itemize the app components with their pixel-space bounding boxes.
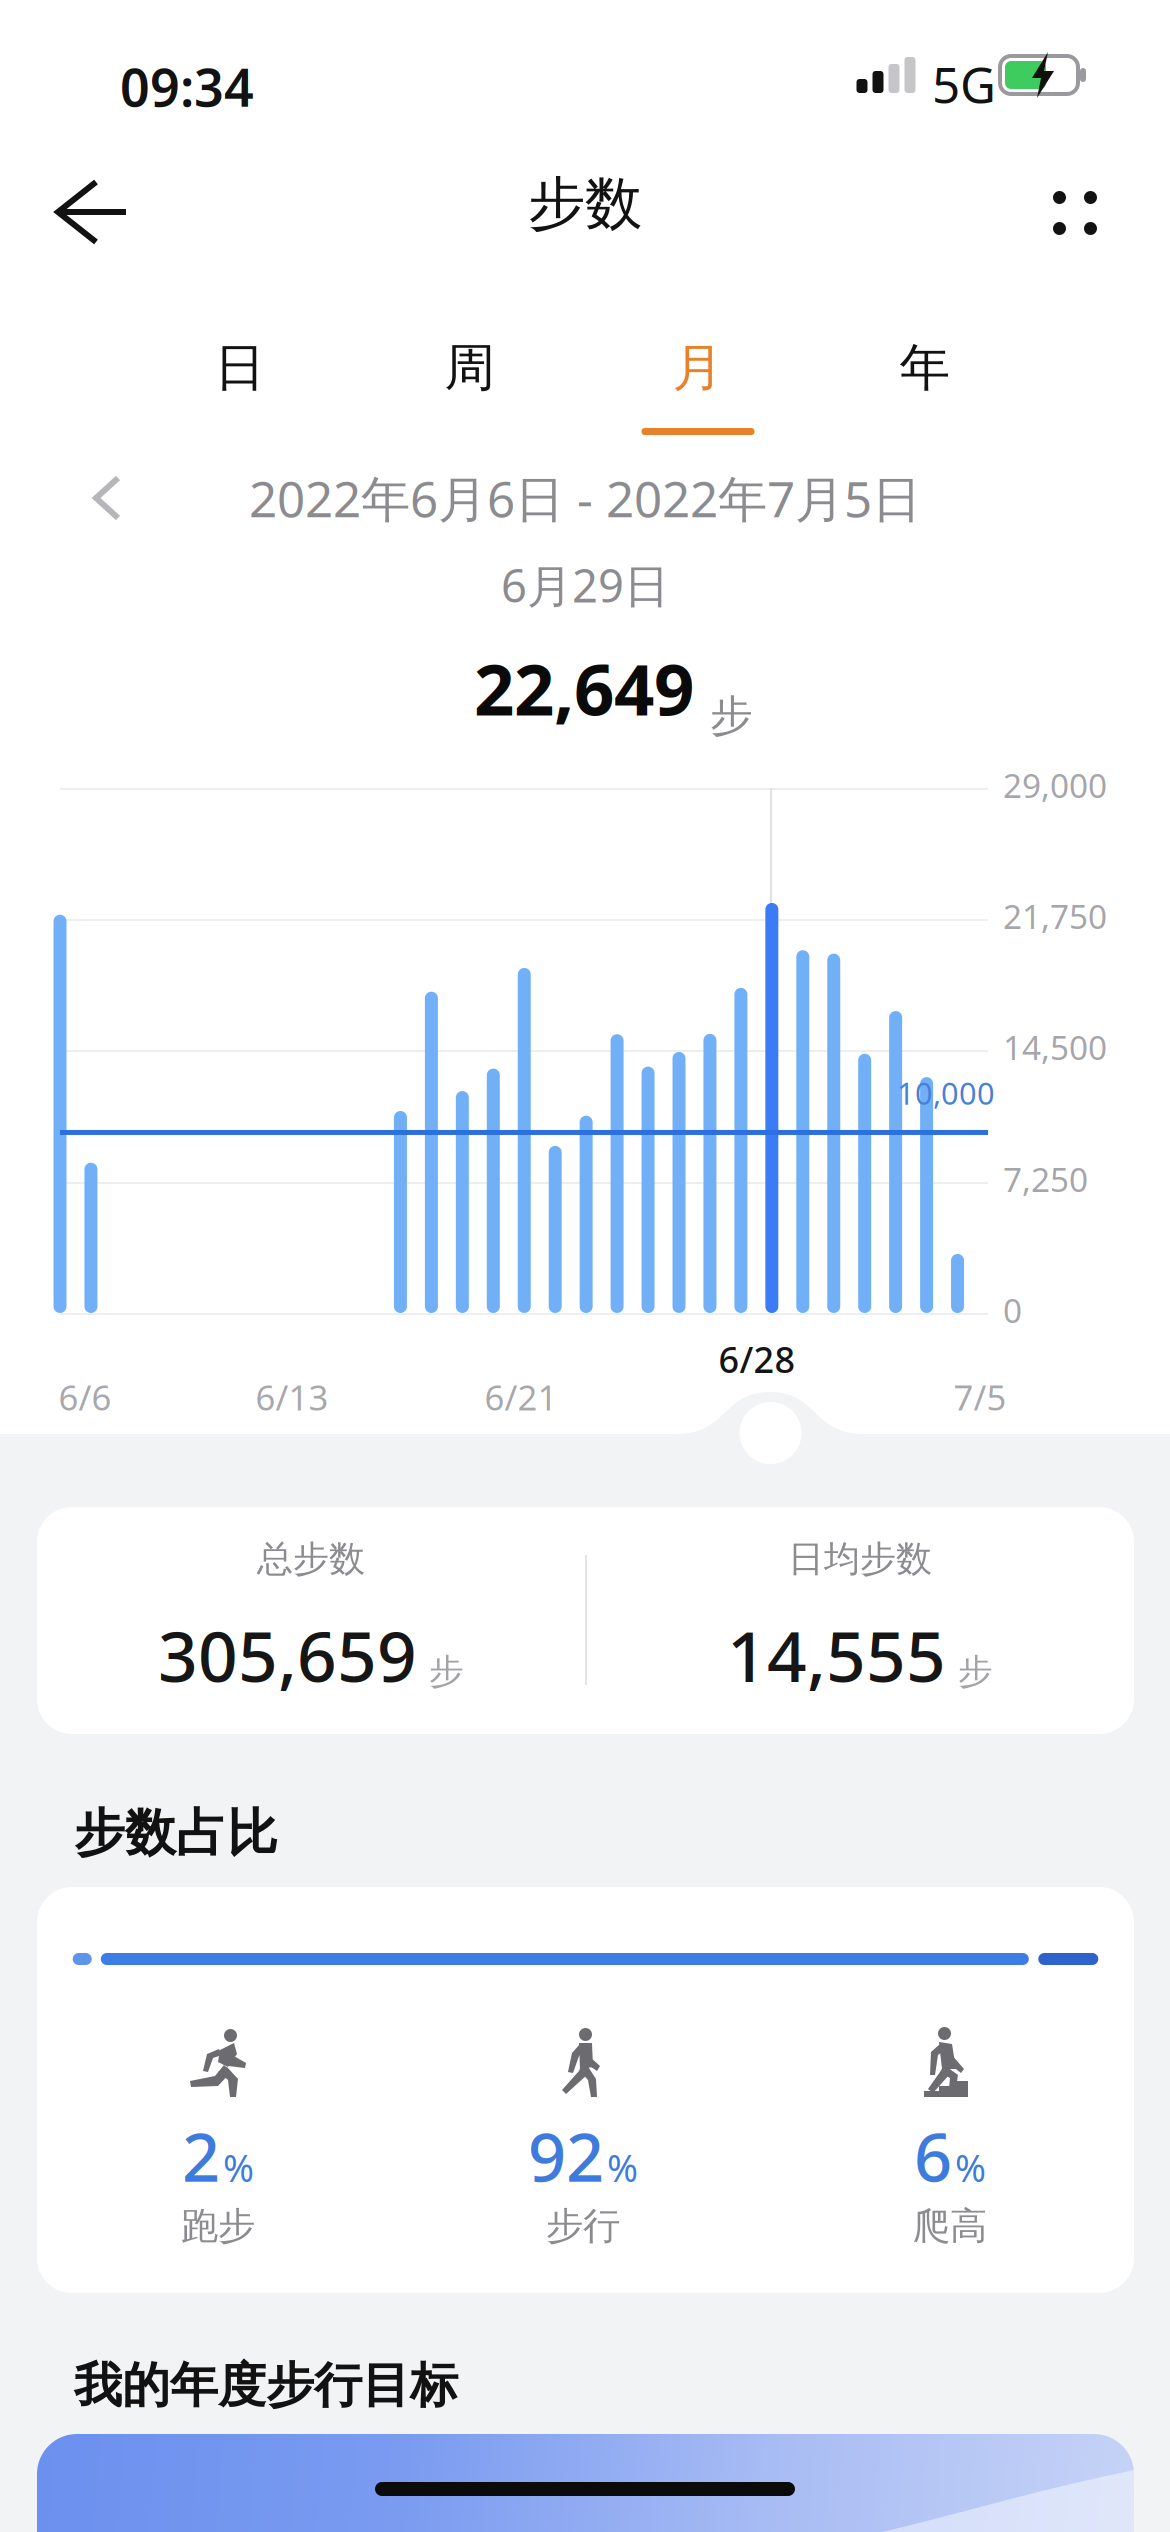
- staticText: 2022年6月6日 - 2022年7月5日: [249, 465, 921, 531]
- staticText: 6月29日: [501, 555, 669, 615]
- staticText: 29,000: [1003, 763, 1107, 807]
- staticText: 日: [214, 337, 265, 399]
- staticText: 日均步数: [788, 1537, 932, 1581]
- staticText: 0: [1003, 1288, 1022, 1332]
- button[interactable]: 我的年度步行目标: [37, 2434, 1134, 2532]
- staticText: 305,659: [158, 1609, 417, 1701]
- staticText: 10,000: [897, 1073, 995, 1113]
- staticText: 5G: [932, 51, 996, 116]
- button[interactable]: 年: [845, 330, 1005, 450]
- staticText: 2: [182, 2112, 220, 2200]
- staticText: 21,750: [1003, 894, 1107, 938]
- button[interactable]: Back: [38, 157, 148, 267]
- staticText: %: [607, 2143, 638, 2192]
- button[interactable]: 月: [618, 330, 778, 450]
- staticText: 周: [444, 337, 495, 399]
- staticText: 22,649: [474, 641, 694, 735]
- staticText: 步行: [546, 2203, 620, 2249]
- button[interactable]: 日: [160, 330, 320, 450]
- staticText: 步数占比: [74, 1802, 278, 1864]
- button[interactable]: 周: [390, 330, 550, 450]
- staticText: 我的年度步行目标: [74, 2356, 458, 2415]
- staticText: 跑步: [181, 2203, 255, 2249]
- staticText: 步: [429, 1650, 464, 1693]
- staticText: 6: [914, 2112, 952, 2200]
- staticText: 6/21: [484, 1374, 557, 1420]
- button[interactable]: More options: [1018, 157, 1128, 267]
- staticText: 年: [899, 337, 950, 399]
- button[interactable]: Expand details: [739, 1402, 801, 1464]
- staticText: 7,250: [1003, 1157, 1088, 1201]
- staticText: 步: [958, 1650, 993, 1693]
- staticText: 6/28: [718, 1335, 795, 1383]
- staticText: 爬高: [913, 2203, 987, 2249]
- staticText: 步数: [528, 169, 642, 239]
- staticText: 总步数: [257, 1537, 365, 1581]
- staticText: 92: [528, 2112, 604, 2200]
- button[interactable]: Previous period: [68, 463, 148, 533]
- staticText: %: [223, 2143, 254, 2192]
- staticText: 14,555: [727, 1609, 946, 1701]
- staticText: 7/5: [953, 1374, 1006, 1420]
- staticText: 09:34: [120, 52, 254, 121]
- staticText: 月: [672, 337, 723, 399]
- staticText: %: [955, 2143, 986, 2192]
- staticText: 14,500: [1003, 1025, 1107, 1069]
- staticText: 6/13: [255, 1374, 328, 1420]
- staticText: 6/6: [58, 1374, 111, 1420]
- staticText: 步: [710, 690, 753, 742]
